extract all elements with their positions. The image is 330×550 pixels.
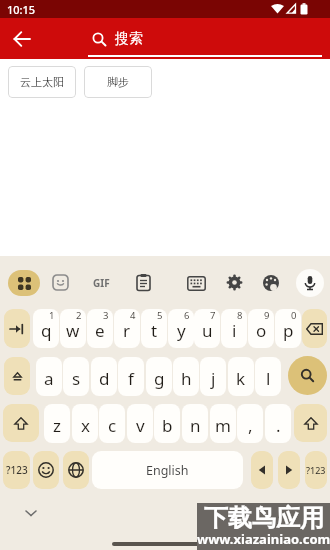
staticText: www.xiazainiao.com (197, 530, 330, 548)
button[interactable]: GIF (88, 271, 114, 295)
staticText: n (190, 414, 201, 437)
button[interactable]: e (87, 309, 113, 348)
staticText: ?123 (6, 463, 28, 477)
staticText: English (146, 462, 189, 479)
button[interactable]: d (91, 357, 117, 396)
button[interactable]: z (44, 404, 70, 443)
staticText: , (248, 414, 253, 437)
button[interactable]: g (146, 357, 172, 396)
staticText: f (128, 367, 134, 390)
staticText: 云上太阳 (20, 75, 64, 89)
staticText: 1 (49, 309, 55, 322)
button[interactable]: ?123 (305, 451, 327, 489)
staticText: i (232, 319, 237, 342)
button[interactable]: f (118, 357, 144, 396)
button[interactable]: t (141, 309, 167, 348)
staticText: q (41, 319, 52, 342)
staticText: 10:15 (7, 2, 36, 17)
button[interactable] (226, 274, 243, 291)
staticText: 8 (237, 309, 243, 322)
staticText: 0 (291, 309, 297, 322)
staticText: e (95, 319, 105, 342)
staticText: m (215, 414, 231, 437)
staticText: 下载鸟应用 (204, 503, 324, 533)
button[interactable]: r (114, 309, 140, 348)
button[interactable]: a (36, 357, 62, 396)
staticText: r (123, 319, 131, 342)
button[interactable] (135, 274, 152, 291)
staticText: t (151, 319, 158, 342)
button[interactable]: , (237, 404, 263, 443)
staticText: v (136, 414, 145, 437)
button[interactable] (22, 506, 40, 520)
staticText: p (283, 319, 294, 342)
button[interactable] (296, 269, 324, 297)
staticText: b (162, 414, 173, 437)
staticText: . (276, 414, 281, 437)
button[interactable]: l (255, 357, 281, 396)
staticText: 7 (210, 309, 216, 322)
staticText: d (99, 367, 110, 390)
button[interactable]: English (92, 451, 243, 489)
button[interactable] (52, 274, 70, 292)
button[interactable] (8, 270, 40, 296)
button[interactable]: j (200, 357, 226, 396)
button[interactable]: n (182, 404, 208, 443)
button[interactable] (251, 451, 273, 489)
staticText: u (202, 319, 213, 342)
button[interactable] (262, 274, 280, 292)
staticText: 5 (157, 309, 163, 322)
button[interactable]: m (210, 404, 236, 443)
staticText: x (81, 414, 90, 437)
button[interactable] (4, 309, 30, 348)
staticText: y (177, 319, 186, 342)
staticText: s (72, 367, 81, 390)
button[interactable]: c (99, 404, 125, 443)
staticText: j (211, 367, 216, 390)
staticText: z (53, 414, 61, 437)
button[interactable] (6, 23, 38, 55)
staticText: c (108, 414, 117, 437)
staticText: 脚步 (107, 75, 129, 89)
button[interactable] (302, 309, 327, 348)
button[interactable]: s (63, 357, 89, 396)
staticText: a (44, 367, 54, 390)
button[interactable]: 脚步 (84, 66, 152, 98)
staticText: 4 (130, 309, 136, 322)
staticText: ?123 (306, 464, 326, 476)
staticText: 3 (103, 309, 109, 322)
button[interactable] (294, 404, 327, 442)
button[interactable]: b (154, 404, 180, 443)
button[interactable]: u (194, 309, 220, 348)
button[interactable] (33, 451, 59, 489)
button[interactable]: y (168, 309, 194, 348)
button[interactable]: v (127, 404, 153, 443)
button[interactable]: p (275, 309, 301, 348)
staticText: l (266, 367, 271, 390)
staticText: 2 (76, 309, 82, 322)
button[interactable]: x (72, 404, 98, 443)
staticText: h (181, 367, 192, 390)
button[interactable]: q (33, 309, 59, 348)
button[interactable]: h (173, 357, 199, 396)
staticText: GIF (93, 276, 110, 290)
button[interactable]: w (60, 309, 86, 348)
button[interactable] (288, 356, 327, 395)
button[interactable]: o (248, 309, 274, 348)
staticText: o (256, 319, 267, 342)
button[interactable] (278, 451, 300, 489)
button[interactable] (3, 404, 39, 442)
button[interactable] (63, 451, 89, 489)
button[interactable]: ?123 (3, 451, 30, 489)
button[interactable]: . (265, 404, 291, 443)
button[interactable]: 云上太阳 (8, 66, 76, 98)
button[interactable] (4, 357, 30, 395)
staticText: 9 (264, 309, 270, 322)
staticText: g (154, 367, 165, 390)
staticText: w (66, 319, 80, 342)
button[interactable]: i (221, 309, 247, 348)
button[interactable]: k (228, 357, 254, 396)
staticText: 搜索 (115, 30, 143, 48)
button[interactable] (187, 276, 206, 291)
staticText: k (236, 367, 246, 390)
